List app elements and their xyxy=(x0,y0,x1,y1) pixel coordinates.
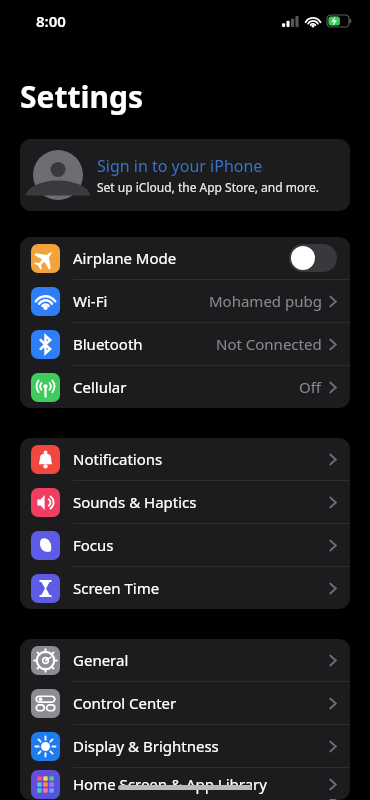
button[interactable]: Display & Brightness xyxy=(20,725,350,768)
staticText: Wi-Fi xyxy=(73,291,108,311)
staticText: Cellular xyxy=(73,377,127,397)
staticText: General xyxy=(73,650,129,670)
staticText: Set up iCloud, the App Store, and more. xyxy=(97,179,319,195)
staticText: Airplane Mode xyxy=(73,248,177,268)
staticText: Bluetooth xyxy=(73,334,143,354)
button[interactable]: Notifications xyxy=(20,438,350,481)
staticText: Screen Time xyxy=(73,578,160,598)
staticText: 8:00 xyxy=(36,11,66,31)
button[interactable]: Control Center xyxy=(20,682,350,725)
staticText: Home Screen & App Library xyxy=(73,774,267,794)
staticText: Sign in to your iPhone xyxy=(97,155,263,177)
staticText: Mohamed pubg xyxy=(209,291,322,311)
button[interactable]: Cellular xyxy=(20,366,350,408)
button[interactable]: Airplane Mode xyxy=(20,237,350,280)
button[interactable]: Screen Time xyxy=(20,567,350,609)
staticText: Focus xyxy=(73,535,114,555)
button[interactable]: Airplane Mode toggle xyxy=(289,244,337,272)
staticText: Sounds & Haptics xyxy=(73,492,197,512)
button[interactable]: Sign in to your iPhone xyxy=(20,139,350,211)
button[interactable]: Bluetooth xyxy=(20,323,350,366)
staticText: Settings xyxy=(20,76,143,117)
button[interactable]: Sounds & Haptics xyxy=(20,481,350,524)
button[interactable]: General xyxy=(20,639,350,682)
button[interactable]: Home Screen & App Library xyxy=(20,768,350,800)
staticText: Control Center xyxy=(73,693,177,713)
staticText: Display & Brightness xyxy=(73,736,219,756)
staticText: Notifications xyxy=(73,449,163,469)
button[interactable]: Wi-Fi xyxy=(20,280,350,323)
button[interactable]: Focus xyxy=(20,524,350,567)
staticText: Not Connected xyxy=(216,334,322,354)
staticText: Off xyxy=(299,377,322,397)
